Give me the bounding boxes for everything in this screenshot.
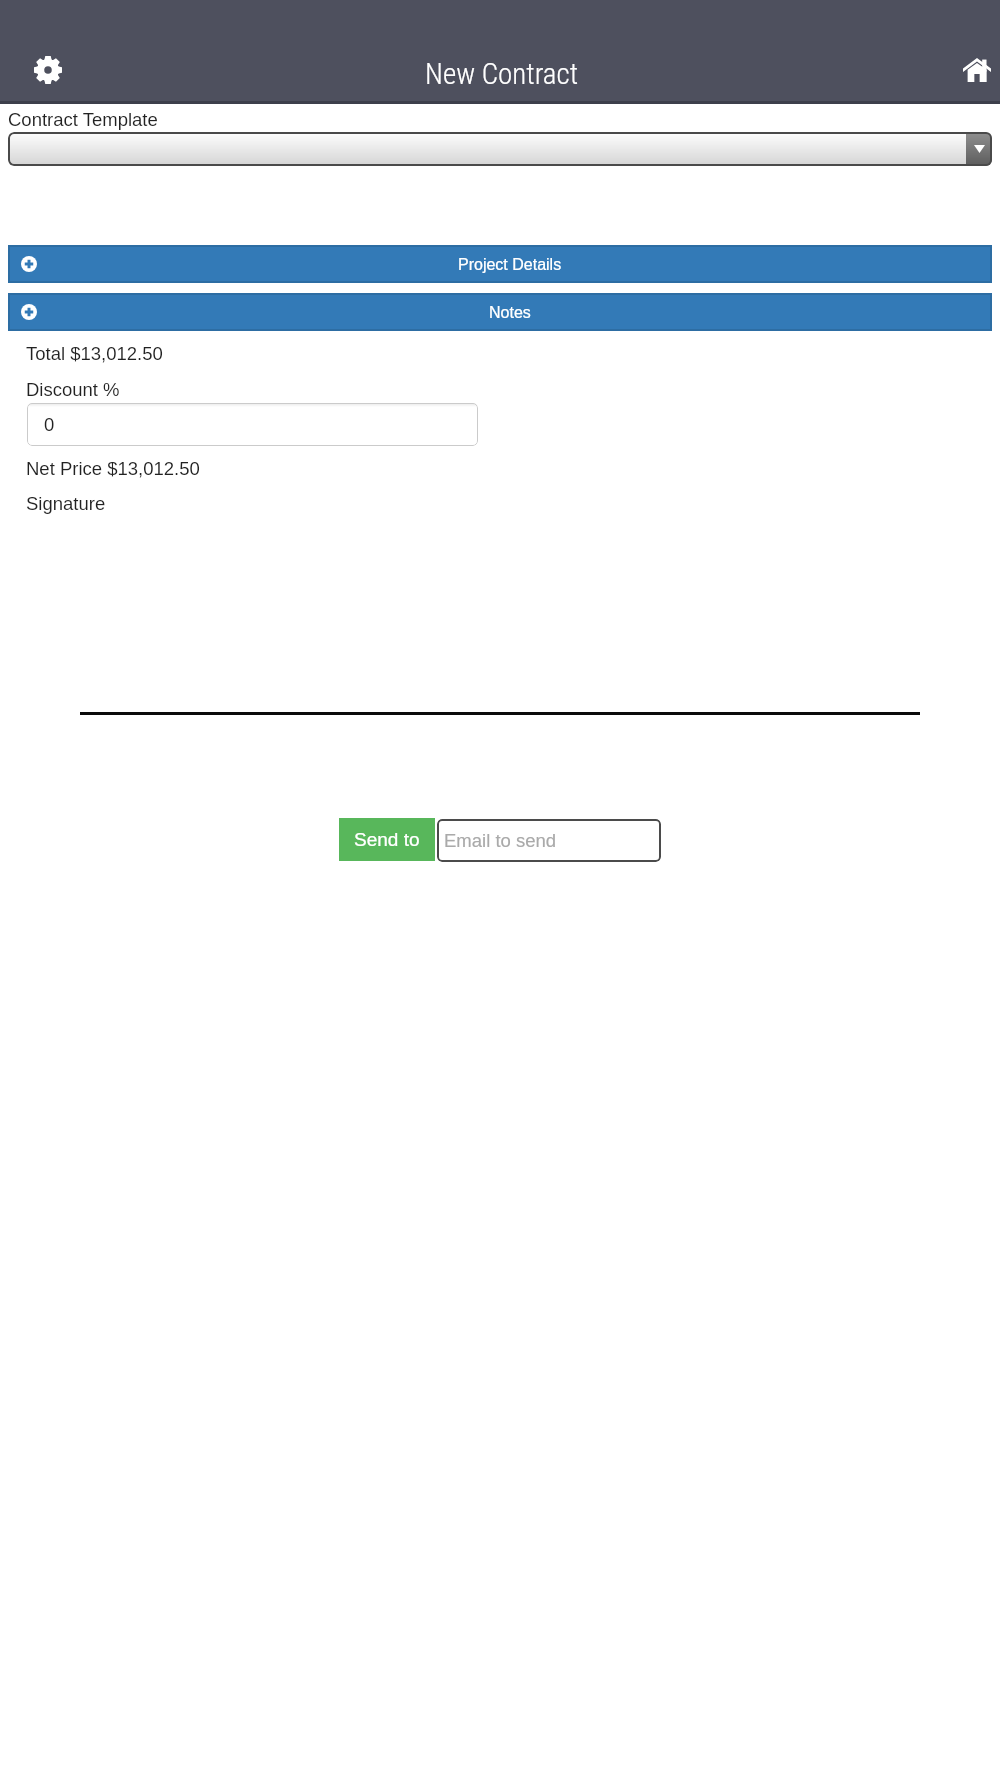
button[interactable]: Discount percent [27, 403, 478, 446]
staticText: 0 [44, 414, 55, 435]
staticText: Total $13,012.50 [26, 343, 163, 364]
button[interactable]: Settings [22, 44, 74, 96]
staticText: Contract Template [8, 109, 158, 130]
staticText: Project Details [458, 256, 562, 274]
staticText: Signature [26, 493, 106, 514]
staticText: Net Price $13,012.50 [26, 458, 200, 479]
button[interactable]: Project Details [8, 245, 992, 283]
staticText: Send to [354, 829, 420, 850]
staticText: Discount % [26, 379, 120, 400]
button[interactable]: Send to [339, 818, 435, 861]
button[interactable]: Email to send [437, 819, 661, 862]
staticText: New Contract [425, 57, 579, 91]
staticText: Notes [489, 304, 531, 322]
button[interactable]: Home [948, 44, 1000, 96]
button[interactable]: Notes [8, 293, 992, 331]
button[interactable]: Contract Template [8, 132, 992, 166]
staticText: Email to send [444, 830, 557, 851]
